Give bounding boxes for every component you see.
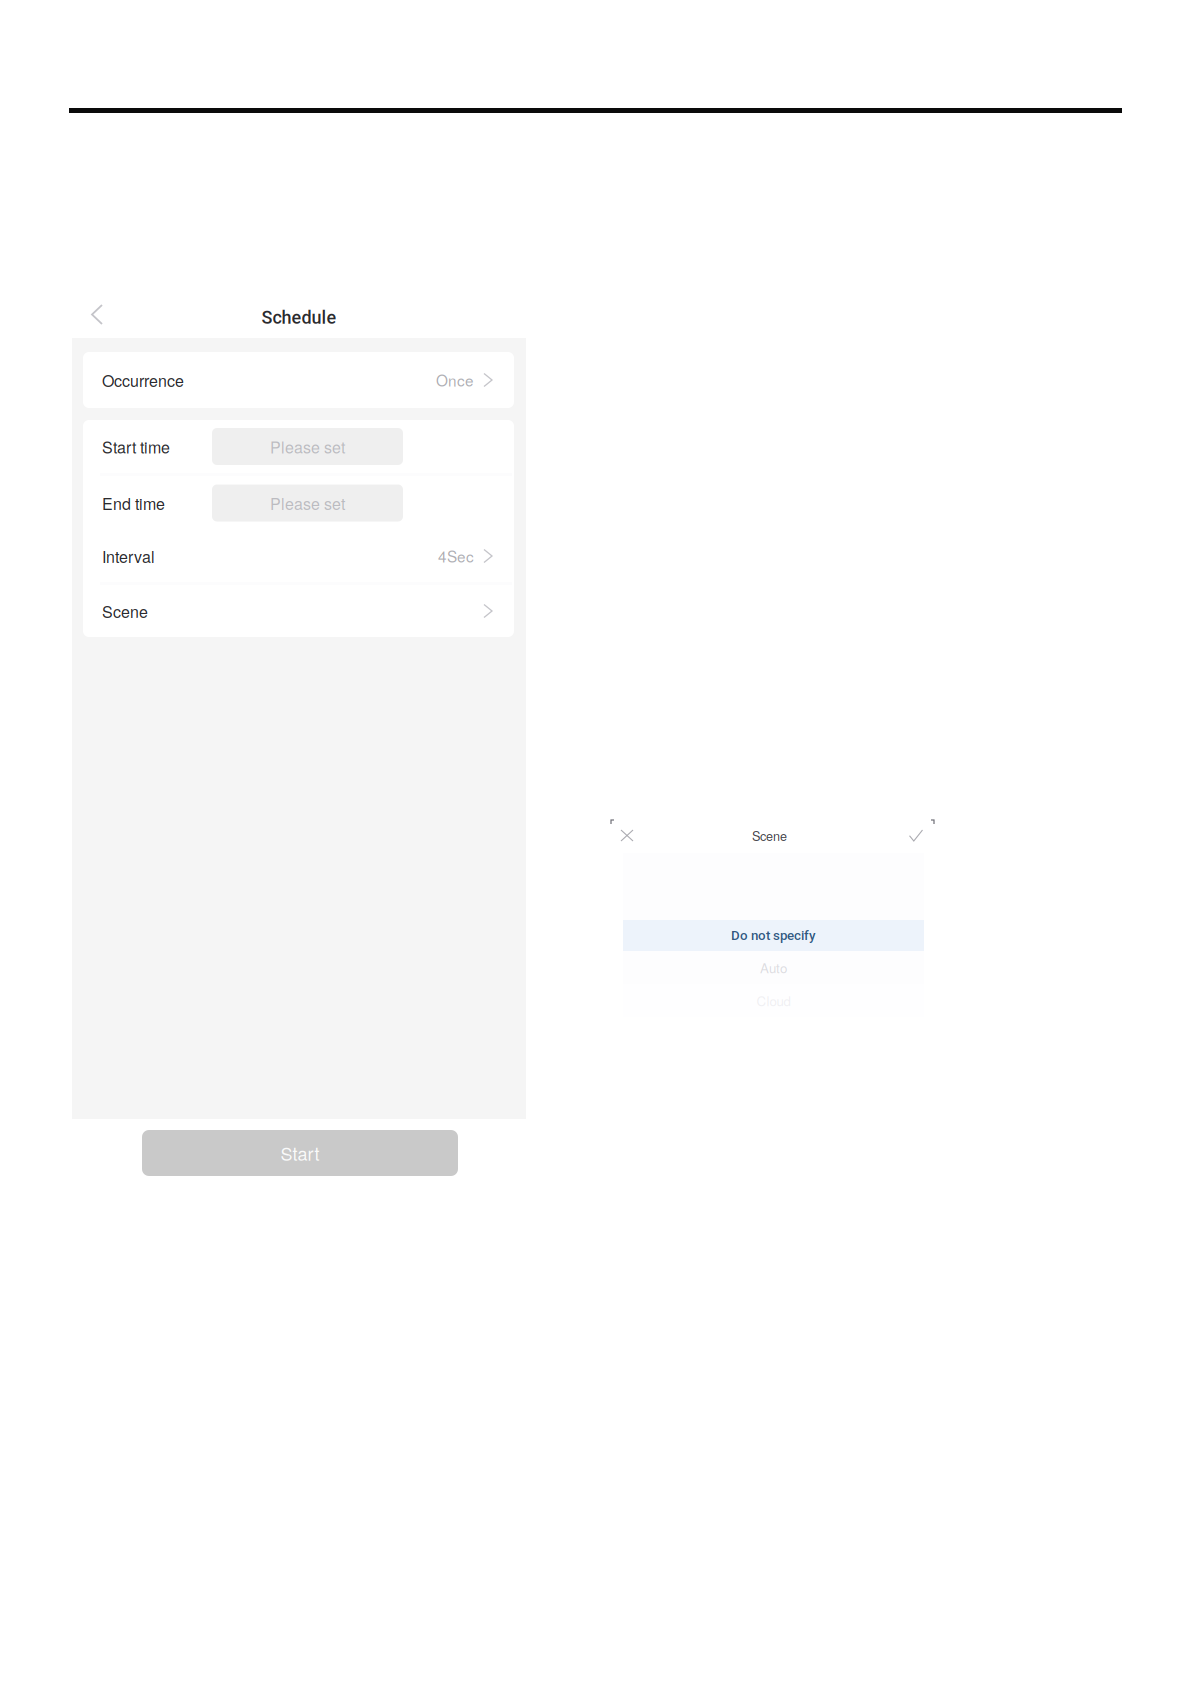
button[interactable]: Interval [83,530,514,582]
staticText: Occurrence [102,368,184,391]
staticText: Schedule [261,307,336,328]
button[interactable]: Scene [83,585,514,637]
staticText: End time [102,491,165,514]
button[interactable]: Confirm [904,823,928,847]
staticText: Interval [102,544,155,567]
staticText: Once [436,369,474,391]
staticText: Please set [270,435,345,458]
staticText: Scene [102,599,148,622]
staticText: Cloud [756,991,790,1010]
staticText: Do not specify [731,928,816,943]
button[interactable]: Please set [212,484,403,521]
staticText: 4Sec [438,545,474,567]
button[interactable]: Start [142,1130,458,1176]
button[interactable]: Please set [212,428,403,465]
staticText: Start time [102,435,170,458]
button[interactable]: Occurrence [83,352,514,408]
staticText: Scene [752,826,787,844]
button[interactable]: Do not specify [623,920,924,951]
button[interactable]: Back [72,294,122,331]
staticText: Start [280,1140,319,1166]
staticText: Auto [760,958,787,977]
staticText: Please set [270,491,345,514]
button[interactable]: Close [615,823,639,847]
